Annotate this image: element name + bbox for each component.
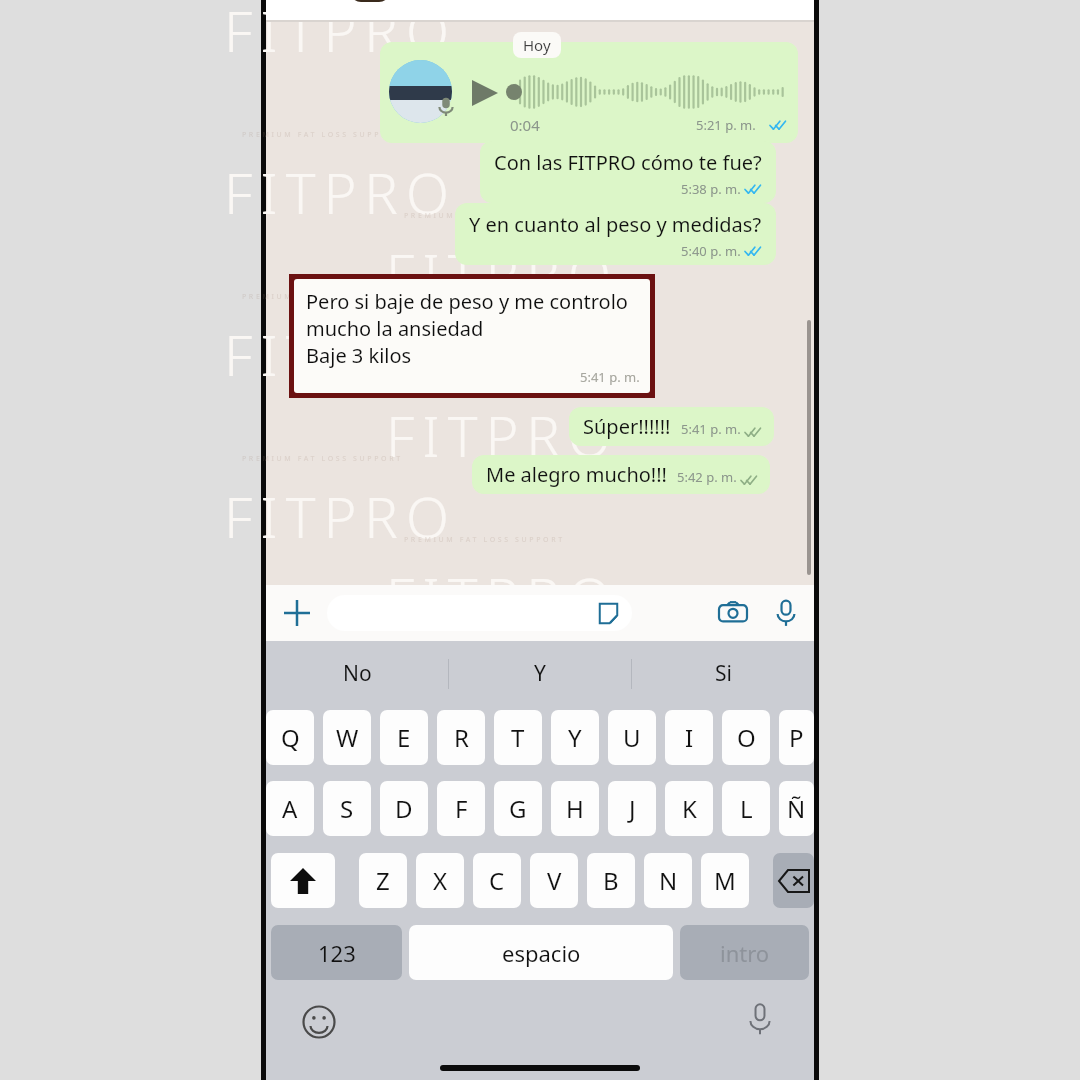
staticText: O bbox=[737, 721, 756, 754]
staticText: espacio bbox=[502, 938, 581, 968]
staticText: Ñ bbox=[787, 792, 806, 825]
staticText: PREMIUM FAT LOSS SUPPORT bbox=[404, 49, 565, 59]
button[interactable]: X bbox=[416, 853, 464, 908]
staticText: G bbox=[509, 792, 527, 825]
button[interactable]: Y en cuanto al peso y medidas? bbox=[455, 203, 776, 265]
button[interactable]: Pero si baje de peso y me controlo bbox=[294, 279, 650, 393]
button[interactable]: K bbox=[665, 781, 713, 836]
button[interactable]: B bbox=[587, 853, 635, 908]
button[interactable]: Súper!!!!!! bbox=[569, 407, 774, 446]
staticText: Me alegro mucho!!! bbox=[486, 461, 667, 488]
button[interactable]: L bbox=[722, 781, 770, 836]
staticText: Z bbox=[376, 864, 390, 897]
staticText: 123 bbox=[318, 938, 356, 968]
staticText: C bbox=[489, 864, 505, 897]
button[interactable]: Y bbox=[449, 641, 631, 706]
staticText: I bbox=[685, 721, 694, 754]
staticText: FITPRO bbox=[224, 316, 457, 392]
staticText: Y bbox=[534, 659, 546, 688]
staticText: PREMIUM FAT LOSS SUPPORT bbox=[242, 454, 403, 464]
staticText: PREMIUM FAT LOSS SUPPORT bbox=[242, 292, 403, 302]
staticText: A bbox=[282, 792, 298, 825]
button[interactable]: espacio bbox=[409, 925, 673, 980]
staticText: M bbox=[714, 864, 736, 897]
staticText: H bbox=[566, 792, 584, 825]
button[interactable]: J bbox=[608, 781, 656, 836]
staticText: Con las FITPRO cómo te fue? bbox=[494, 149, 762, 176]
staticText: FITPRO bbox=[386, 235, 619, 311]
staticText: FITPRO bbox=[386, 73, 619, 149]
staticText: D bbox=[395, 792, 413, 825]
staticText: U bbox=[623, 721, 641, 754]
button[interactable]: Voice message bbox=[772, 599, 800, 627]
staticText: S bbox=[340, 792, 354, 825]
button[interactable]: Q bbox=[266, 710, 314, 765]
button[interactable]: Stickers bbox=[327, 595, 632, 631]
staticText: R bbox=[454, 721, 469, 754]
button[interactable]: 123 bbox=[271, 925, 402, 980]
button[interactable]: A bbox=[266, 781, 314, 836]
staticText: Súper!!!!!! bbox=[583, 413, 671, 440]
button[interactable]: N bbox=[644, 853, 692, 908]
button[interactable]: M bbox=[701, 853, 749, 908]
staticText: Q bbox=[281, 721, 300, 754]
button[interactable]: O bbox=[722, 710, 770, 765]
button[interactable]: G bbox=[494, 781, 542, 836]
staticText: 5:42 p. m. bbox=[677, 468, 737, 486]
button[interactable]: Dictation bbox=[744, 1003, 776, 1035]
button[interactable]: S bbox=[323, 781, 371, 836]
other: Stickers bbox=[597, 602, 620, 625]
staticText: X bbox=[433, 864, 448, 897]
button[interactable]: T bbox=[494, 710, 542, 765]
button[interactable]: R bbox=[437, 710, 485, 765]
button[interactable]: intro bbox=[680, 925, 809, 980]
staticText: Si bbox=[715, 659, 732, 688]
staticText: 0:04 bbox=[510, 115, 540, 135]
button[interactable]: H bbox=[551, 781, 599, 836]
staticText: PREMIUM FAT LOSS SUPPORT bbox=[242, 130, 403, 140]
button[interactable]: Emoji bbox=[302, 1005, 336, 1039]
staticText: FITPRO bbox=[224, 154, 457, 230]
button[interactable]: F bbox=[437, 781, 485, 836]
staticText: P bbox=[789, 721, 804, 754]
staticText: 5:38 p. m. bbox=[681, 180, 741, 198]
button[interactable]: Ñ bbox=[779, 781, 814, 836]
staticText: N bbox=[659, 864, 678, 897]
staticText: intro bbox=[720, 938, 770, 968]
button[interactable]: Attach bbox=[282, 598, 312, 628]
button[interactable]: Camera bbox=[718, 598, 748, 628]
staticText: 5:41 p. m. bbox=[681, 420, 741, 438]
staticText: Baje 3 kilos bbox=[306, 342, 412, 369]
staticText: J bbox=[629, 792, 636, 825]
staticText: V bbox=[547, 864, 562, 897]
staticText: PREMIUM FAT LOSS SUPPORT bbox=[404, 211, 565, 221]
button[interactable]: E bbox=[380, 710, 428, 765]
button[interactable]: P bbox=[779, 710, 814, 765]
button[interactable]: Con las FITPRO cómo te fue? bbox=[480, 141, 776, 203]
button[interactable]: Shift bbox=[271, 853, 335, 908]
button[interactable]: W bbox=[323, 710, 371, 765]
staticText: FITPRO bbox=[224, 478, 457, 554]
button[interactable]: V bbox=[530, 853, 578, 908]
button[interactable]: 0:04 bbox=[380, 42, 798, 143]
staticText: FITPRO bbox=[386, 559, 619, 635]
button[interactable]: Y bbox=[551, 710, 599, 765]
staticText: FITPRO bbox=[386, 397, 619, 473]
staticText: T bbox=[511, 721, 525, 754]
button[interactable]: U bbox=[608, 710, 656, 765]
button[interactable]: Me alegro mucho!!! bbox=[472, 455, 770, 494]
button[interactable]: D bbox=[380, 781, 428, 836]
button[interactable]: No bbox=[266, 641, 448, 706]
staticText: No bbox=[343, 659, 372, 688]
button[interactable]: C bbox=[473, 853, 521, 908]
button[interactable]: Backspace bbox=[773, 853, 814, 908]
button[interactable]: Z bbox=[359, 853, 407, 908]
button[interactable]: Si bbox=[632, 641, 814, 706]
staticText: W bbox=[336, 721, 359, 754]
staticText: F bbox=[455, 792, 468, 825]
button[interactable]: I bbox=[665, 710, 713, 765]
button[interactable]: Contact avatar bbox=[350, 0, 390, 2]
staticText: FITPRO bbox=[224, 0, 457, 68]
staticText: 5:40 p. m. bbox=[681, 242, 741, 260]
